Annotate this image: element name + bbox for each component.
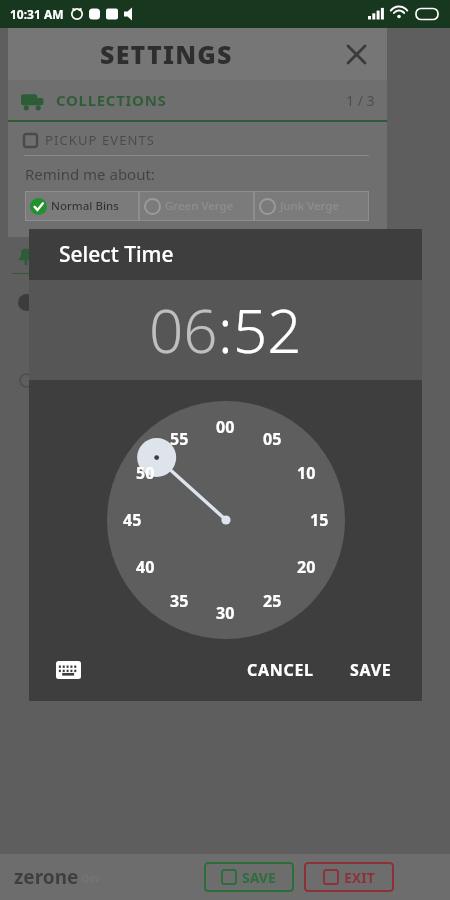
staticText: 1 / 3 bbox=[346, 91, 375, 110]
staticText: CANCEL bbox=[247, 659, 314, 681]
button[interactable]: Switch to keyboard input bbox=[51, 653, 85, 687]
staticText: 55 bbox=[170, 428, 189, 450]
staticText: 10:31 AM bbox=[10, 6, 64, 22]
staticText: 05 bbox=[263, 428, 282, 450]
staticText: COLLECTIONS bbox=[56, 90, 167, 110]
staticText: PICKUP EVENTS bbox=[45, 131, 156, 149]
staticText: 40 bbox=[136, 556, 155, 578]
staticText: 00 bbox=[216, 416, 235, 438]
staticText: SAVE bbox=[350, 659, 392, 681]
staticText: Remind me about: bbox=[25, 164, 155, 184]
staticText: 50 bbox=[136, 462, 155, 484]
staticText: Junk Verge bbox=[280, 198, 340, 214]
staticText: zerone bbox=[14, 864, 79, 890]
staticText: Normal Bins bbox=[51, 198, 119, 214]
button[interactable]: Junk Verge bbox=[254, 191, 369, 221]
staticText: Select Time bbox=[59, 240, 174, 269]
staticText: 45 bbox=[123, 509, 142, 531]
staticText: : bbox=[218, 289, 233, 371]
button[interactable]: SAVE bbox=[204, 862, 294, 892]
staticText: EXIT bbox=[344, 868, 375, 887]
staticText: Green Verge bbox=[165, 198, 234, 214]
button[interactable]: Normal Bins bbox=[25, 191, 139, 221]
staticText: 25 bbox=[263, 590, 282, 612]
staticText: 15 bbox=[310, 509, 329, 531]
button[interactable]: 06 bbox=[149, 289, 218, 371]
button[interactable]: EXIT bbox=[304, 862, 394, 892]
button[interactable]: Minute dial bbox=[107, 401, 345, 639]
staticText: 30 bbox=[216, 602, 235, 624]
staticText: 35 bbox=[170, 590, 189, 612]
staticText: SAVE bbox=[242, 868, 276, 887]
staticText: 10 bbox=[297, 462, 316, 484]
staticText: SETTINGS bbox=[100, 37, 233, 71]
button[interactable]: CANCEL bbox=[237, 651, 324, 689]
button[interactable]: SAVE bbox=[340, 651, 402, 689]
button[interactable]: Green Verge bbox=[139, 191, 254, 221]
button[interactable]: 52 bbox=[233, 289, 302, 371]
button[interactable]: COLLECTIONS bbox=[20, 80, 375, 120]
staticText: 20 bbox=[297, 556, 316, 578]
button[interactable]: Close settings bbox=[325, 28, 387, 80]
